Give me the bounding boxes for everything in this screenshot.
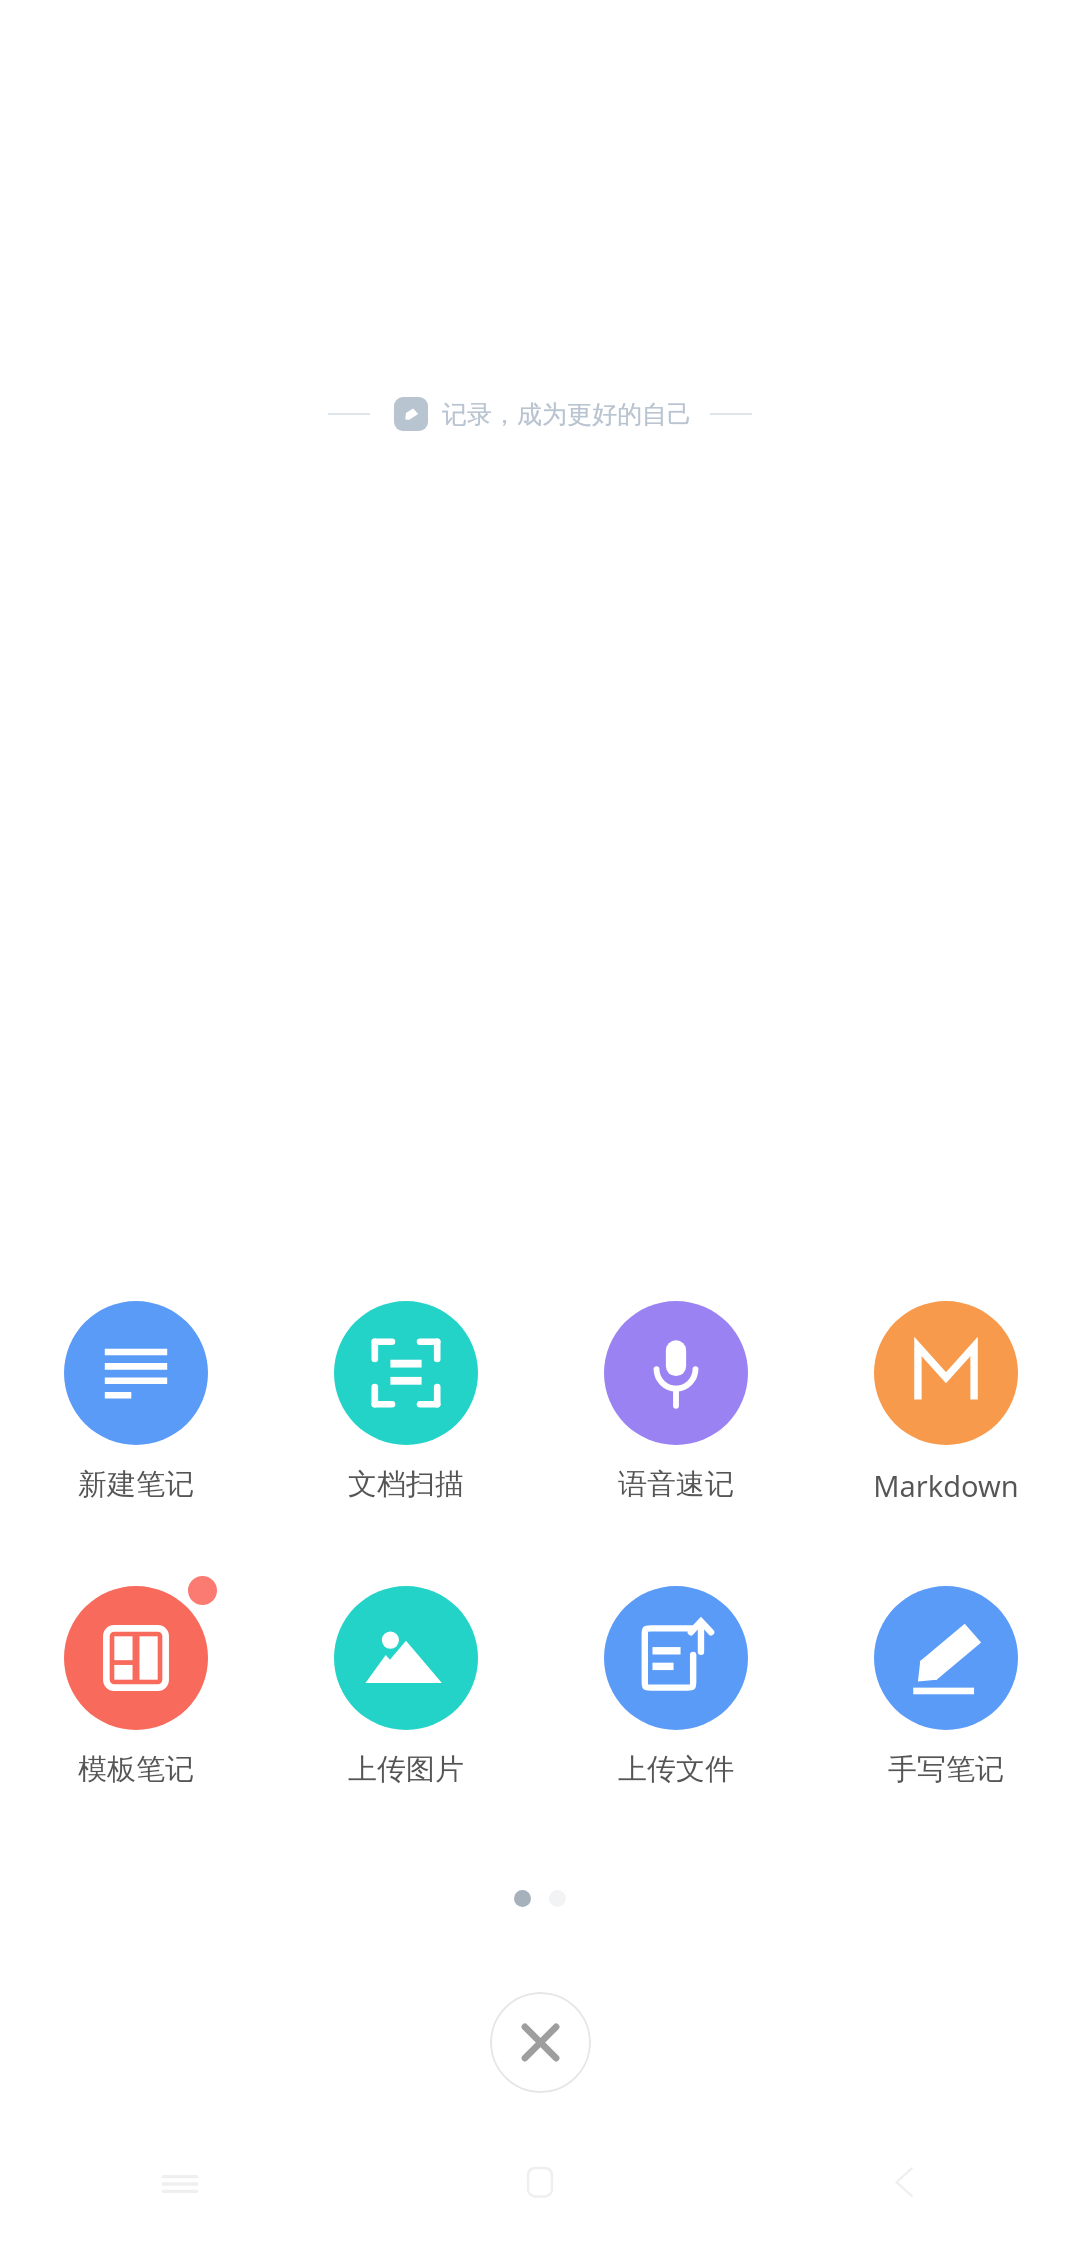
button[interactable]: 模板笔记 <box>50 1576 221 1788</box>
button[interactable]: 上传文件 <box>590 1576 761 1788</box>
button[interactable]: 文档扫描 <box>320 1291 491 1503</box>
staticText: 语音速记 <box>618 1466 734 1503</box>
button[interactable]: 新建笔记 <box>50 1291 221 1503</box>
button[interactable]: 手写笔记 <box>860 1576 1031 1788</box>
staticText: 上传文件 <box>618 1751 734 1788</box>
staticText: Markdown <box>873 1466 1019 1505</box>
staticText: 新建笔记 <box>78 1466 194 1503</box>
staticText: 文档扫描 <box>348 1466 464 1503</box>
button[interactable]: 语音速记 <box>590 1291 761 1503</box>
button[interactable]: Close <box>490 1992 591 2093</box>
staticText: 手写笔记 <box>888 1751 1004 1788</box>
button[interactable]: 上传图片 <box>320 1576 491 1788</box>
button[interactable]: Markdown <box>860 1291 1031 1505</box>
staticText: 上传图片 <box>348 1751 464 1788</box>
staticText: 模板笔记 <box>78 1751 194 1788</box>
staticText: 记录，成为更好的自己 <box>442 399 692 430</box>
